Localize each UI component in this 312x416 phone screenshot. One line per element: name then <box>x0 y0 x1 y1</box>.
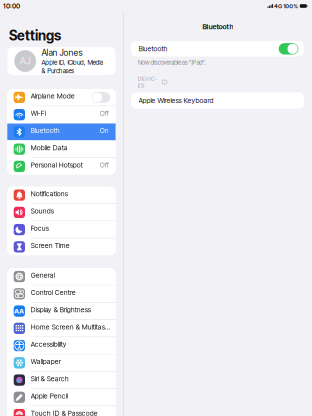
staticText: Display & Brightness <box>31 305 91 314</box>
staticText: On <box>100 126 109 135</box>
button[interactable]: Screen Time <box>7 238 116 255</box>
staticText: AA <box>14 307 24 315</box>
button[interactable]: Control Centre <box>7 285 116 302</box>
staticText: Accessibility <box>31 340 67 348</box>
staticText: General <box>31 271 55 279</box>
button[interactable]: Home Screen & Multitas… <box>7 320 116 337</box>
button[interactable]: Touch ID & Passcode <box>7 406 116 416</box>
staticText: 10:00 <box>3 2 20 10</box>
button[interactable]: AA <box>7 303 116 319</box>
staticText: Personal Hotspot <box>31 161 83 169</box>
staticText: Apple Pencil <box>31 392 68 400</box>
button[interactable]: AJ <box>7 47 116 75</box>
staticText: Bluetooth <box>138 45 167 53</box>
button[interactable]: Accessibility <box>7 337 116 354</box>
staticText: Home Screen & Multitas… <box>31 323 110 331</box>
button[interactable]: Sounds <box>7 204 116 221</box>
staticText: DEVICES <box>138 75 157 89</box>
button[interactable]: Personal Hotspot <box>7 158 116 175</box>
staticText: Off <box>100 109 109 117</box>
staticText: Apple ID, iCloud, Media <box>41 58 103 66</box>
staticText: AJ <box>20 56 30 67</box>
staticText: Notifications <box>31 189 68 198</box>
staticText: Sounds <box>31 207 54 215</box>
staticText: Wi-Fi <box>31 109 46 117</box>
button[interactable]: Apple Wireless Keyboard <box>131 92 304 109</box>
button[interactable]: Wi-Fi <box>7 106 116 123</box>
staticText: & Purchases <box>41 67 74 75</box>
staticText: Bluetooth <box>202 22 233 31</box>
button[interactable]: Notifications <box>7 187 116 203</box>
staticText: Apple Wireless Keyboard <box>138 96 213 105</box>
button[interactable]: Siri & Search <box>7 372 116 388</box>
staticText: Wallpaper <box>31 357 61 366</box>
button[interactable]: General <box>7 268 116 285</box>
staticText: Now discoverable as “iPad”. <box>138 59 205 66</box>
button[interactable]: Apple Pencil <box>7 389 116 406</box>
button[interactable]: Wallpaper <box>7 354 116 371</box>
button[interactable]: Airplane Mode <box>7 89 116 106</box>
staticText: Mobile Data <box>31 144 68 152</box>
button[interactable]: Bluetooth <box>131 41 304 57</box>
staticText: 4G <box>274 2 282 10</box>
staticText: 100% <box>283 2 298 10</box>
staticText: Screen Time <box>31 241 70 250</box>
staticText: Siri & Search <box>31 374 69 383</box>
button[interactable]: Bluetooth <box>7 124 116 140</box>
button[interactable]: Focus <box>7 221 116 238</box>
staticText: Touch ID & Passcode <box>31 409 98 416</box>
staticText: Bluetooth <box>31 126 60 135</box>
staticText: Alan Jones <box>41 47 82 58</box>
staticText: Settings <box>9 27 61 44</box>
staticText: Control Centre <box>31 288 76 297</box>
staticText: Airplane Mode <box>31 92 75 100</box>
staticText: Focus <box>31 224 49 232</box>
button[interactable]: Mobile Data <box>7 141 116 157</box>
staticText: Off <box>100 161 109 169</box>
